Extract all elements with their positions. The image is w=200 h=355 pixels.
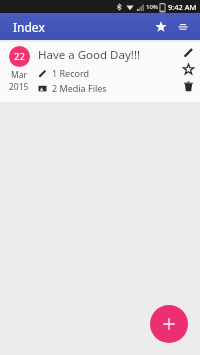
button[interactable]: Sort xyxy=(172,16,194,38)
button[interactable]: Edit xyxy=(177,44,199,61)
staticText: 1 Record xyxy=(52,67,89,79)
staticText: Mar xyxy=(11,69,27,81)
staticText: 9:42 AM xyxy=(168,2,197,12)
button[interactable]: 22 xyxy=(0,42,200,102)
staticText: 2 Media Files xyxy=(52,82,107,94)
button[interactable]: Favorite xyxy=(177,61,199,78)
staticText: 10% xyxy=(146,3,158,11)
button[interactable]: Delete xyxy=(177,78,199,95)
staticText: 22 xyxy=(14,50,25,63)
staticText: Have a Good Day!!! xyxy=(38,47,141,63)
button[interactable]: Favorites xyxy=(150,16,172,38)
button[interactable]: Add new entry xyxy=(150,305,188,343)
staticText: Index xyxy=(13,19,45,35)
staticText: 2015 xyxy=(9,81,29,93)
